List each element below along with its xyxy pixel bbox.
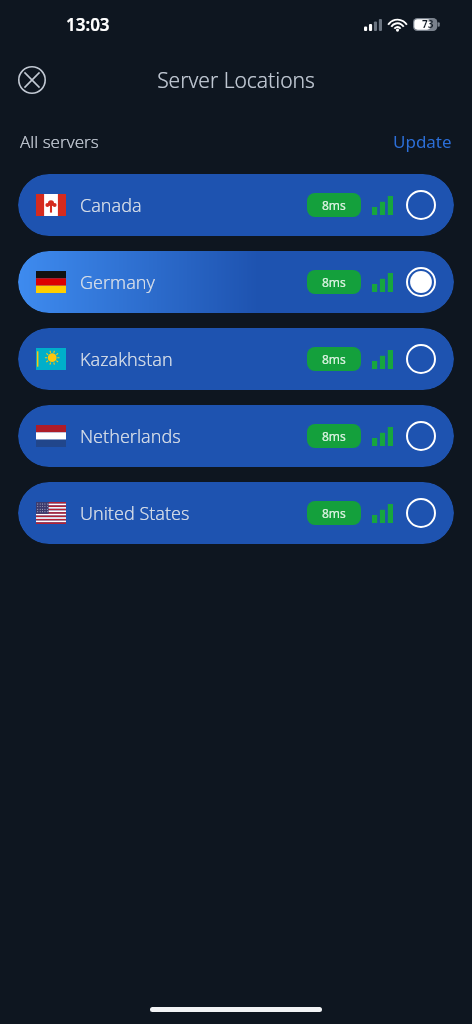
staticText: Netherlands (80, 424, 181, 449)
staticText: Canada (80, 193, 142, 218)
staticText: 8ms (322, 505, 346, 521)
staticText: Germany (80, 270, 155, 295)
button[interactable]: Germany (18, 251, 454, 313)
staticText: 73 (422, 17, 434, 31)
button[interactable]: Kazakhstan (18, 328, 454, 390)
button[interactable]: Close (18, 66, 46, 94)
staticText: 8ms (322, 351, 346, 367)
staticText: United States (80, 501, 190, 526)
staticText: Server Locations (157, 66, 315, 95)
staticText: Update (393, 130, 452, 153)
staticText: 13:03 (66, 13, 110, 36)
button[interactable]: Netherlands (18, 405, 454, 467)
button[interactable]: Update (393, 130, 452, 153)
staticText: 8ms (322, 197, 346, 213)
staticText: 8ms (322, 274, 346, 290)
staticText: Kazakhstan (80, 347, 173, 372)
staticText: All servers (20, 130, 99, 153)
button[interactable]: Canada (18, 174, 454, 236)
staticText: 8ms (322, 428, 346, 444)
button[interactable]: United States (18, 482, 454, 544)
